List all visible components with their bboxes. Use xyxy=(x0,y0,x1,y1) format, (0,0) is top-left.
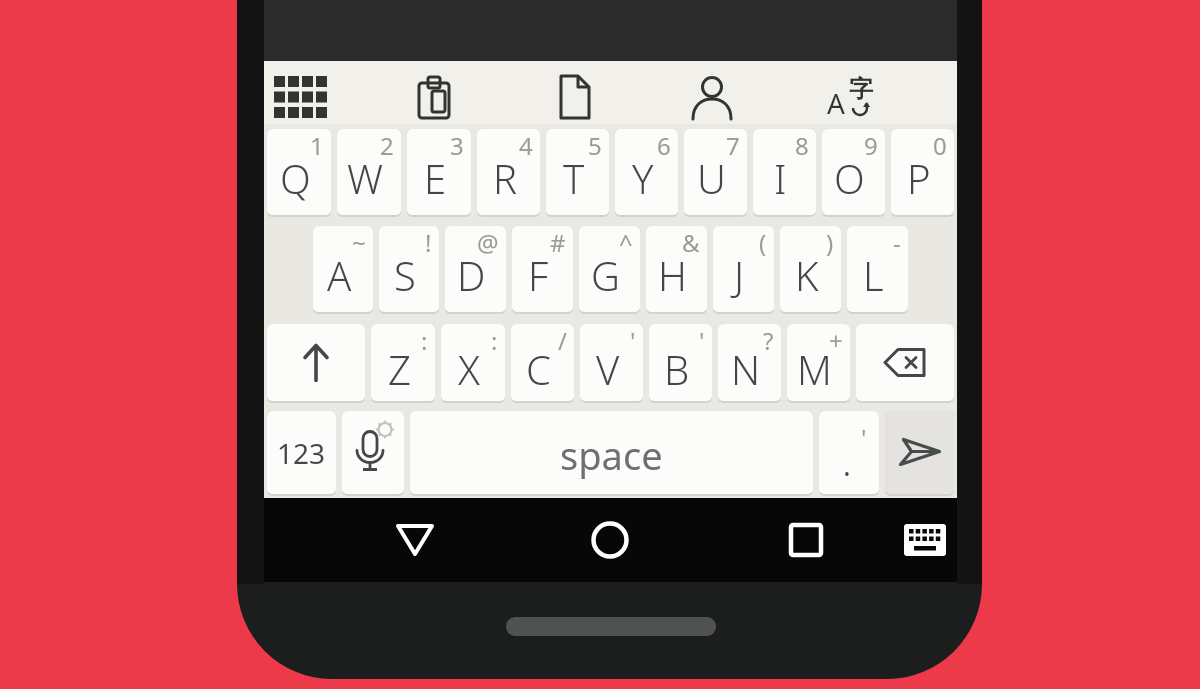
button[interactable] xyxy=(267,324,365,403)
button[interactable]: Z xyxy=(371,324,435,403)
button[interactable]: W xyxy=(337,129,401,217)
staticText: L xyxy=(863,248,884,302)
staticText: P xyxy=(907,151,931,205)
staticText: 2 xyxy=(380,129,394,162)
staticText: 9 xyxy=(864,129,878,162)
staticText: 3 xyxy=(450,129,464,162)
button[interactable] xyxy=(574,504,646,576)
staticText: A xyxy=(327,248,352,302)
button[interactable]: F xyxy=(512,226,573,314)
button[interactable]: D xyxy=(445,226,506,314)
staticText: G xyxy=(591,248,620,302)
button[interactable]: K xyxy=(780,226,841,314)
staticText: X xyxy=(458,342,480,396)
staticText: # xyxy=(550,226,566,259)
staticText: ! xyxy=(425,226,432,259)
staticText: 6 xyxy=(657,129,671,162)
button[interactable]: P xyxy=(891,129,954,217)
button[interactable]: Q xyxy=(267,129,331,217)
staticText: 8 xyxy=(795,129,809,162)
staticText: J xyxy=(734,248,745,302)
staticText: 123 xyxy=(277,434,326,472)
button[interactable]: 123 xyxy=(267,411,336,496)
button[interactable] xyxy=(539,65,611,128)
staticText: 字 xyxy=(849,74,873,104)
button[interactable]: X xyxy=(441,324,505,403)
staticText: N xyxy=(731,342,761,396)
staticText: ^ xyxy=(619,226,633,259)
button[interactable]: space xyxy=(410,411,813,496)
button[interactable]: B xyxy=(649,324,712,403)
button[interactable] xyxy=(770,504,842,576)
staticText: - xyxy=(893,226,901,259)
button[interactable]: G xyxy=(579,226,640,314)
button[interactable]: V xyxy=(580,324,643,403)
button[interactable] xyxy=(379,504,451,576)
staticText: F xyxy=(528,248,549,302)
button[interactable]: C xyxy=(511,324,574,403)
staticText: M xyxy=(797,342,832,396)
staticText: U xyxy=(697,151,726,205)
staticText: E xyxy=(424,151,447,205)
button[interactable]: N xyxy=(718,324,781,403)
staticText: Y xyxy=(632,151,654,205)
staticText: C xyxy=(526,342,551,396)
button[interactable]: A xyxy=(313,226,373,314)
staticText: 0 xyxy=(933,129,947,162)
button[interactable] xyxy=(885,411,954,496)
staticText: S xyxy=(394,248,416,302)
button[interactable] xyxy=(401,65,473,128)
staticText: A xyxy=(827,84,845,122)
staticText: Z xyxy=(388,342,411,396)
button[interactable]: A xyxy=(814,65,886,128)
button[interactable]: H xyxy=(646,226,707,314)
button[interactable]: U xyxy=(684,129,747,217)
staticText: W xyxy=(347,151,383,205)
staticText: O xyxy=(834,151,865,205)
button[interactable] xyxy=(264,65,336,128)
button[interactable] xyxy=(889,504,961,576)
button[interactable]: O xyxy=(822,129,885,217)
button[interactable] xyxy=(676,65,748,128)
staticText: ' xyxy=(630,324,636,357)
staticText: ' xyxy=(861,421,867,454)
button[interactable]: T xyxy=(546,129,609,217)
button[interactable]: J xyxy=(713,226,774,314)
staticText: space xyxy=(560,429,663,481)
staticText: I xyxy=(774,151,787,205)
staticText: D xyxy=(457,248,486,302)
staticText: 7 xyxy=(726,129,740,162)
staticText: B xyxy=(664,342,690,396)
staticText: ~ xyxy=(352,226,366,259)
staticText: . xyxy=(842,433,852,487)
staticText: K xyxy=(795,248,819,302)
staticText: : xyxy=(421,324,428,357)
staticText: 4 xyxy=(519,129,533,162)
button[interactable]: M xyxy=(787,324,850,403)
button[interactable] xyxy=(342,411,404,496)
staticText: ) xyxy=(826,226,834,259)
staticText: Q xyxy=(280,151,311,205)
staticText: @ xyxy=(477,226,499,259)
staticText: ? xyxy=(763,324,774,357)
button[interactable]: S xyxy=(379,226,439,314)
staticText: 5 xyxy=(588,129,602,162)
staticText: R xyxy=(493,151,517,205)
button[interactable] xyxy=(856,324,954,403)
staticText: / xyxy=(558,324,567,357)
staticText: & xyxy=(682,226,700,259)
staticText: 1 xyxy=(310,129,324,162)
button[interactable]: R xyxy=(477,129,540,217)
staticText: V xyxy=(596,342,620,396)
staticText: + xyxy=(829,324,843,357)
button[interactable]: I xyxy=(753,129,816,217)
staticText: H xyxy=(658,248,687,302)
button[interactable]: . xyxy=(819,411,879,496)
staticText: T xyxy=(563,151,585,205)
button[interactable]: L xyxy=(847,226,908,314)
staticText: : xyxy=(491,324,498,357)
button[interactable]: E xyxy=(407,129,471,217)
staticText: ' xyxy=(699,324,705,357)
button[interactable]: Y xyxy=(615,129,678,217)
staticText: ( xyxy=(759,226,767,259)
